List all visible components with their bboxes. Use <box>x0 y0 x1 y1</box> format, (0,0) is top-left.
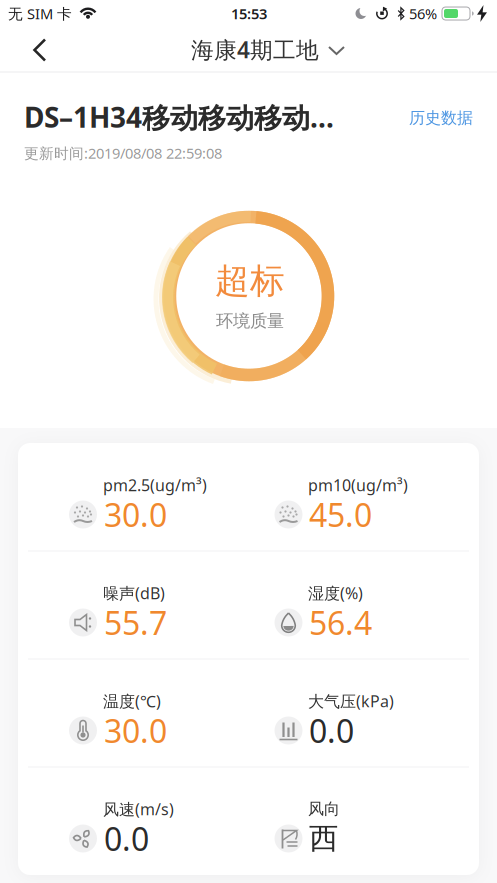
staticText: 超标 <box>215 260 285 302</box>
staticText: 55.7 <box>104 601 167 644</box>
staticText: 大气压(kPa) <box>308 690 394 712</box>
button[interactable] <box>23 33 67 67</box>
staticText: 风向 <box>308 799 340 819</box>
staticText: 历史数据 <box>409 108 473 128</box>
staticText: 56.4 <box>309 601 372 644</box>
staticText: 15:53 <box>231 4 267 23</box>
staticText: 0.0 <box>309 709 354 752</box>
staticText: 更新时间:2019/08/08 22:59:08 <box>24 143 222 163</box>
staticText: DS–1H34移动移动移动... <box>24 98 334 136</box>
staticText: 30.0 <box>104 493 167 536</box>
staticText: 30.0 <box>104 709 167 752</box>
staticText: 环境质量 <box>216 310 284 332</box>
staticText: pm2.5(ug/m³) <box>103 474 207 496</box>
staticText: 西 <box>309 820 338 856</box>
button[interactable]: 历史数据 <box>395 100 487 136</box>
staticText: 56% <box>409 4 437 23</box>
staticText: pm10(ug/m³) <box>308 474 408 496</box>
staticText: 噪声(dB) <box>103 582 165 604</box>
staticText: 湿度(%) <box>308 582 363 604</box>
staticText: 0.0 <box>104 817 149 860</box>
staticText: 45.0 <box>309 493 372 536</box>
staticText: 温度(℃) <box>103 690 161 712</box>
staticText: 无 SIM 卡 <box>8 4 72 23</box>
button[interactable]: 海康4期工地 <box>189 32 349 66</box>
staticText: 风速(m/s) <box>103 798 174 820</box>
staticText: 海康4期工地 <box>191 34 319 64</box>
